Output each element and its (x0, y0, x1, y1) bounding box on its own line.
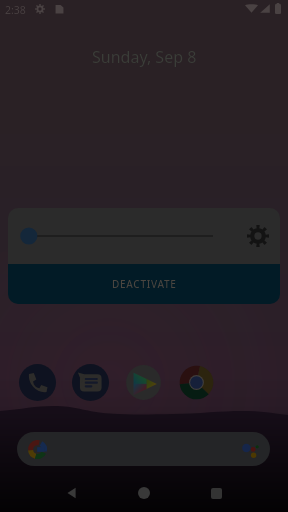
button[interactable]: Chrome (178, 364, 215, 401)
button[interactable]: Settings (236, 208, 280, 264)
button[interactable]: Back (60, 481, 84, 505)
staticText: Sunday, Sep 8 (92, 46, 197, 68)
staticText: DEACTIVATE (112, 277, 177, 291)
button[interactable]: DEACTIVATE (8, 264, 280, 304)
button[interactable]: Dim level (8, 208, 236, 264)
button[interactable]: Play Store (125, 364, 162, 401)
button[interactable]: Phone (19, 364, 56, 401)
staticText: 2:38 (5, 3, 26, 17)
button[interactable]: Messages (72, 364, 109, 401)
button[interactable]: Recent apps (204, 481, 228, 505)
button[interactable]: Search (17, 432, 270, 466)
button[interactable]: Home (132, 481, 156, 505)
